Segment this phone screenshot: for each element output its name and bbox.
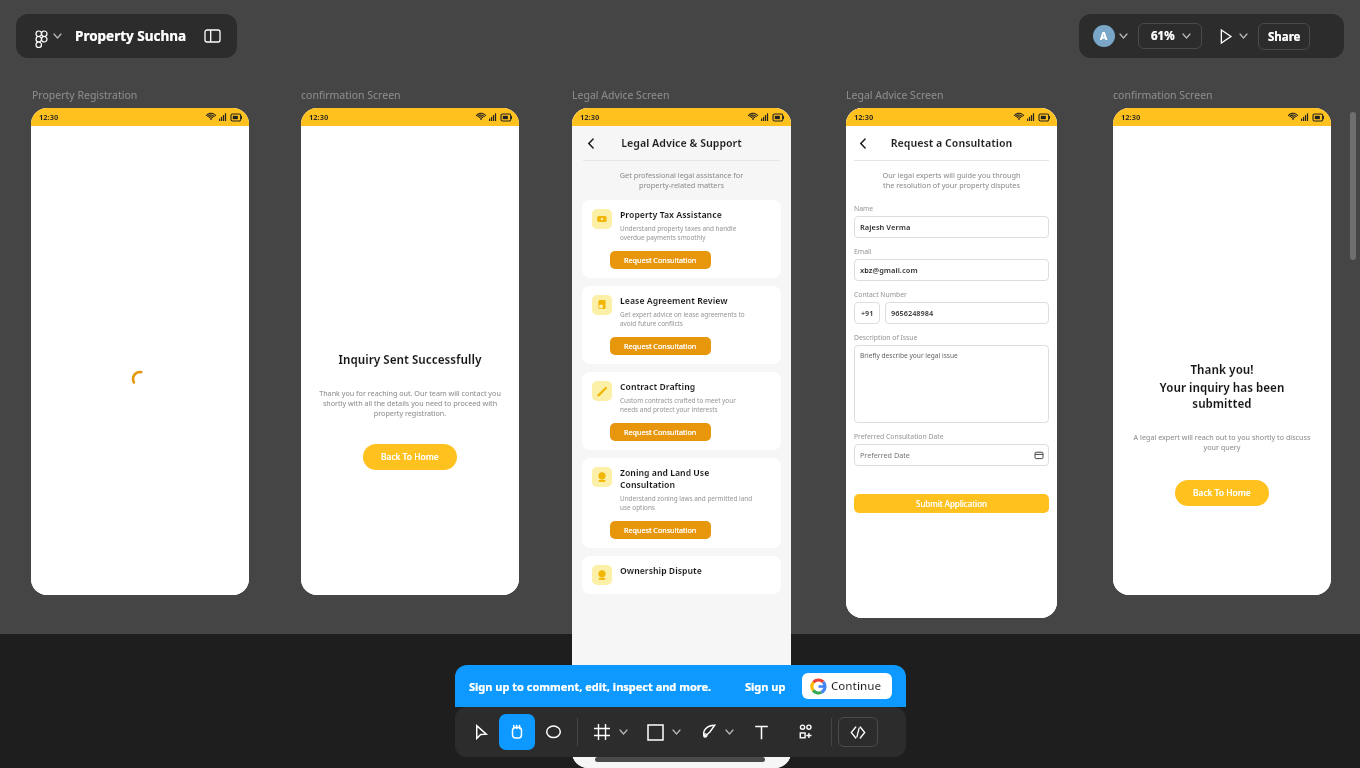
staticText: Our legal experts will guide you through… — [856, 170, 1047, 190]
button[interactable]: Ownership Dispute — [582, 556, 781, 594]
staticText: Request Consultation — [624, 255, 697, 265]
staticText: 12:30 — [580, 112, 600, 122]
button[interactable]: Back — [582, 134, 600, 152]
staticText: Description of Issue — [854, 333, 918, 342]
staticText: 12:30 — [309, 112, 329, 122]
staticText: Inquiry Sent Successfully — [319, 352, 501, 368]
button[interactable]: 9656248984 — [885, 302, 1049, 324]
staticText: Preferred Consultation Date — [854, 432, 944, 441]
staticText: Legal Advice & Support — [572, 136, 791, 150]
staticText: Briefly describe your legal issue — [860, 351, 958, 360]
button[interactable]: Rajesh Verma — [854, 216, 1049, 238]
button[interactable]: Zoning and Land Use Consultation — [582, 458, 781, 548]
staticText: Submit Application — [916, 498, 987, 509]
staticText: Custom contracts crafted to meet your ne… — [620, 396, 736, 414]
button[interactable]: Dev mode — [838, 717, 878, 747]
staticText: Rajesh Verma — [860, 222, 911, 232]
staticText: Email — [854, 247, 872, 256]
button[interactable]: Comment — [535, 714, 571, 750]
staticText: Property Suchna — [75, 27, 187, 45]
button[interactable]: Request Consultation — [610, 337, 711, 355]
staticText: Back To Home — [381, 451, 439, 463]
staticText: Thank you for reaching out. Our team wil… — [319, 388, 501, 418]
staticText: A — [1100, 29, 1108, 43]
staticText: Thank you! — [1131, 362, 1313, 378]
button[interactable]: Preferred Date — [854, 444, 1049, 466]
button[interactable]: Frame tool — [584, 714, 620, 750]
staticText: 12:30 — [39, 112, 59, 122]
button[interactable]: Text tool — [743, 714, 779, 750]
staticText: Share — [1268, 29, 1301, 45]
staticText: Lease Agreement Review — [620, 295, 728, 307]
button[interactable]: Back To Home — [1175, 480, 1269, 506]
button[interactable]: Toggle panels — [201, 25, 223, 47]
staticText: Continue — [831, 678, 882, 694]
button[interactable]: 61% — [1138, 23, 1202, 49]
staticText: Request Consultation — [624, 525, 697, 535]
button[interactable]: Shape tool — [637, 714, 673, 750]
staticText: Legal Advice Screen — [846, 88, 944, 102]
staticText: Request Consultation — [624, 341, 697, 351]
button[interactable]: Submit Application — [854, 494, 1049, 513]
staticText: Contact Number — [854, 290, 907, 299]
staticText: Sign up — [745, 679, 786, 694]
button[interactable]: Present — [1214, 25, 1236, 47]
staticText: Get expert advice on lease agreements to… — [620, 310, 745, 328]
button[interactable]: Figma menu — [30, 25, 52, 47]
button[interactable]: Property Tax Assistance — [582, 200, 781, 278]
staticText: confirmation Screen — [1113, 88, 1213, 102]
staticText: Sign up to comment, edit, inspect and mo… — [469, 679, 712, 694]
staticText: 61% — [1151, 28, 1175, 44]
button[interactable]: Back To Home — [363, 444, 457, 470]
staticText: +91 — [861, 308, 874, 318]
staticText: 12:30 — [1121, 112, 1141, 122]
staticText: Zoning and Land Use Consultation — [620, 467, 710, 491]
button[interactable]: Continue — [802, 673, 892, 699]
staticText: Get professional legal assistance for pr… — [588, 170, 775, 190]
button[interactable]: Hand tool — [499, 714, 535, 750]
button[interactable]: Actions — [789, 714, 825, 750]
staticText: Legal Advice Screen — [572, 88, 670, 102]
staticText: A legal expert will reach out to you sho… — [1131, 432, 1313, 452]
button[interactable]: xbz@gmail.com — [854, 259, 1049, 281]
staticText: Request Consultation — [624, 427, 697, 437]
staticText: 12:30 — [854, 112, 874, 122]
button[interactable]: Request Consultation — [610, 251, 711, 269]
button[interactable]: Back — [854, 134, 872, 152]
staticText: Back To Home — [1193, 487, 1251, 499]
staticText: confirmation Screen — [301, 88, 401, 102]
button[interactable]: Briefly describe your legal issue — [854, 345, 1049, 423]
staticText: Property Tax Assistance — [620, 209, 722, 221]
button[interactable]: Lease Agreement Review — [582, 286, 781, 364]
button[interactable]: Account — [1093, 25, 1115, 47]
staticText: Contract Drafting — [620, 381, 696, 393]
button[interactable]: Pen tool — [690, 714, 726, 750]
staticText: xbz@gmail.com — [860, 265, 918, 275]
staticText: Property Registration — [32, 88, 138, 102]
staticText: Understand property taxes and handle ove… — [620, 224, 737, 242]
staticText: Request a Consultation — [846, 136, 1057, 150]
staticText: Preferred Date — [860, 450, 910, 460]
staticText: 9656248984 — [891, 308, 934, 318]
button[interactable]: Move — [463, 714, 499, 750]
button[interactable]: Request Consultation — [610, 521, 711, 539]
staticText: Understand zoning laws and permitted lan… — [620, 494, 753, 512]
staticText: Your inquiry has been submitted — [1131, 380, 1313, 412]
button[interactable]: Share — [1258, 23, 1310, 50]
staticText: Ownership Dispute — [620, 565, 702, 577]
button[interactable]: Sign up — [739, 675, 792, 698]
staticText: Name — [854, 204, 874, 213]
button[interactable]: Request Consultation — [610, 423, 711, 441]
button[interactable]: Contract Drafting — [582, 372, 781, 450]
